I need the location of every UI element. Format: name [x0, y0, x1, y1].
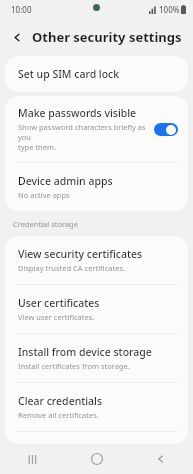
staticText: Other security settings — [32, 28, 182, 46]
button[interactable]: Recent apps — [0, 444, 65, 474]
staticText: View user certificates. — [18, 312, 95, 322]
button[interactable]: Navigate up — [4, 24, 30, 50]
button[interactable]: Device admin apps — [5, 163, 188, 211]
button[interactable]: Set up SIM card lock — [5, 56, 188, 92]
button[interactable]: Make passwords visible — [5, 96, 188, 162]
staticText: View security certificates — [18, 247, 143, 261]
staticText: Device admin apps — [18, 174, 113, 188]
button[interactable]: User certificates — [5, 285, 188, 333]
button[interactable]: Install from device storage — [5, 334, 188, 382]
staticText: Install certificates from storage. — [18, 361, 130, 371]
staticText: User certificates — [18, 296, 100, 310]
staticText: Set up SIM card lock — [18, 67, 120, 81]
staticText: Install from device storage — [18, 345, 152, 359]
staticText: No active apps — [18, 190, 70, 200]
staticText: 10:00 — [11, 4, 32, 15]
staticText: Show password characters briefly as you … — [18, 122, 148, 152]
button[interactable]: View security certificates — [5, 236, 188, 284]
staticText: 100% — [159, 4, 180, 15]
button[interactable]: Make passwords visible, on — [154, 123, 178, 136]
staticText: Credential storage — [13, 219, 78, 229]
button[interactable]: Clear credentials — [5, 383, 188, 431]
staticText: Display trusted CA certificates. — [18, 263, 125, 273]
button[interactable]: Home — [65, 444, 129, 474]
button[interactable]: Back — [129, 444, 193, 474]
staticText: Remove all certificates. — [18, 410, 99, 420]
staticText: Make passwords visible — [18, 106, 137, 120]
staticText: Clear credentials — [18, 394, 103, 408]
